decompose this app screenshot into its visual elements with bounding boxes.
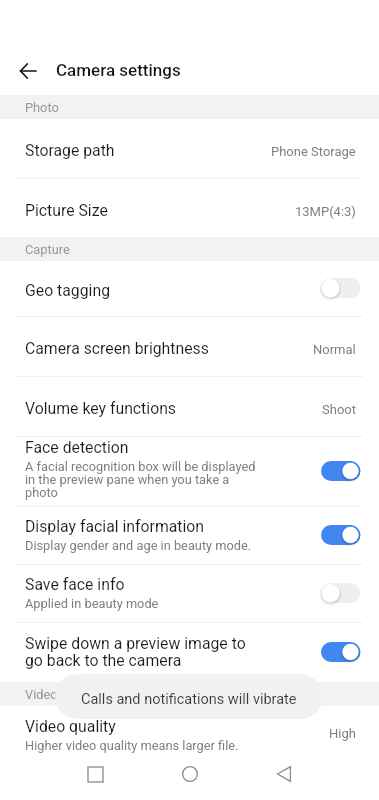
button[interactable]: Off (321, 580, 361, 606)
staticText: Capture (25, 242, 70, 257)
staticText: Picture Size (25, 201, 108, 220)
staticText: Photo (25, 100, 59, 115)
button[interactable]: On (321, 522, 361, 548)
staticText: A facial recognition box will be display… (25, 459, 256, 501)
button[interactable]: Off (321, 275, 361, 301)
staticText: Higher video quality means larger file. (25, 738, 239, 753)
button[interactable]: Recent apps (71, 750, 119, 798)
button[interactable]: Picture Size (0, 179, 379, 237)
button[interactable]: Storage path (0, 119, 379, 178)
staticText: Normal (313, 342, 356, 357)
button[interactable]: Back (260, 750, 308, 798)
staticText: Shoot (322, 402, 356, 417)
button[interactable]: Home (166, 750, 214, 798)
staticText: Display facial information (25, 517, 205, 536)
staticText: Camera settings (56, 60, 181, 80)
staticText: Save face info (25, 575, 125, 594)
button[interactable]: Display facial information (0, 507, 379, 564)
staticText: Video quality (25, 717, 116, 736)
button[interactable]: Save face info (0, 565, 379, 622)
staticText: Camera screen brightness (25, 339, 209, 358)
staticText: Phone Storage (271, 144, 356, 159)
staticText: 13MP(4:3) (295, 204, 356, 219)
button[interactable]: Video quality (0, 706, 379, 760)
staticText: Geo tagging (25, 281, 111, 300)
button[interactable]: Face detection (0, 437, 379, 506)
staticText: Volume key functions (25, 399, 177, 418)
button[interactable]: Volume key functions (0, 377, 379, 436)
staticText: Applied in beauty mode (25, 596, 159, 611)
staticText: High (329, 726, 356, 741)
staticText: Calls and notifications will vibrate (81, 691, 297, 708)
button[interactable]: Navigate up (14, 57, 42, 85)
button[interactable]: Swipe down a preview image to go back to… (0, 623, 379, 682)
button[interactable]: On (321, 639, 361, 665)
staticText: Storage path (25, 141, 115, 160)
button[interactable]: Geo tagging (0, 261, 379, 316)
staticText: Display gender and age in beauty mode. (25, 538, 252, 553)
button[interactable]: On (321, 458, 361, 484)
staticText: Swipe down a preview image to go back to… (25, 634, 246, 670)
staticText: Video (25, 687, 58, 702)
button[interactable]: Camera screen brightness (0, 317, 379, 376)
staticText: Face detection (25, 438, 129, 457)
